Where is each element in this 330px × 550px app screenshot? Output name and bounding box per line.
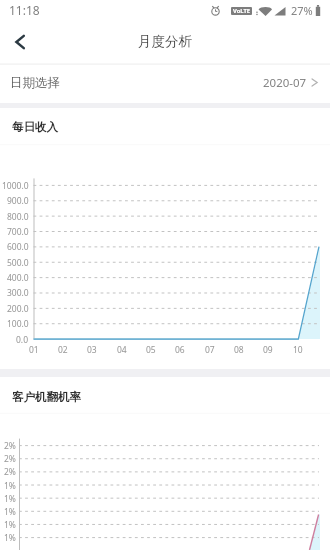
staticText: 400.0 [7, 272, 29, 284]
staticText: 800.0 [7, 211, 29, 223]
staticText: 月度分析 [138, 33, 192, 50]
staticText: 02 [58, 344, 68, 356]
staticText: 1% [4, 493, 16, 505]
staticText: 10 [293, 344, 303, 356]
staticText: 2% [4, 440, 16, 452]
staticText: 07 [205, 344, 215, 356]
staticText: 300.0 [7, 287, 29, 299]
staticText: 06 [175, 344, 185, 356]
staticText: 27% [291, 3, 313, 18]
staticText: 500.0 [7, 257, 29, 269]
staticText: 600.0 [7, 241, 29, 253]
staticText: 11:18 [9, 2, 40, 18]
staticText: 04 [117, 344, 127, 356]
button[interactable]: 日期选择 [0, 63, 330, 102]
staticText: 03 [87, 344, 97, 356]
staticText: 2% [4, 466, 16, 478]
staticText: 客户机翻机率 [12, 390, 81, 404]
staticText: 2% [4, 453, 16, 465]
staticText: 日期选择 [10, 75, 60, 91]
button[interactable]: Back [0, 20, 38, 62]
staticText: 每日收入 [12, 120, 58, 134]
staticText: 700.0 [7, 226, 29, 238]
staticText: 1% [4, 480, 16, 492]
staticText: 09 [263, 344, 273, 356]
staticText: 05 [146, 344, 156, 356]
staticText: 100.0 [7, 318, 29, 330]
staticText: 1% [4, 532, 16, 544]
staticText: 01 [29, 344, 39, 356]
staticText: 1% [4, 506, 16, 518]
staticText: 0.0 [16, 334, 29, 346]
staticText: 200.0 [7, 303, 29, 315]
staticText: 2020-07 [263, 75, 307, 91]
staticText: 1000.0 [2, 180, 29, 192]
staticText: 08 [234, 344, 244, 356]
staticText: VoLTE [233, 7, 250, 15]
staticText: 1% [4, 519, 16, 531]
staticText: 900.0 [7, 195, 29, 207]
